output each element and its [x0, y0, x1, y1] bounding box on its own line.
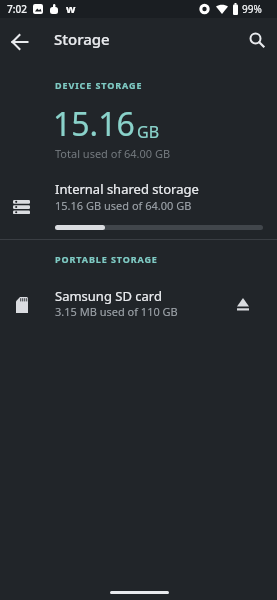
- staticText: 3.15 MB used of 110 GB: [55, 304, 178, 319]
- button[interactable]: Samsung SD card: [0, 276, 277, 328]
- staticText: Internal shared storage: [55, 180, 199, 198]
- staticText: PORTABLE STORAGE: [55, 253, 158, 265]
- staticText: w: [66, 1, 76, 16]
- staticText: 15.16 GB used of 64.00 GB: [55, 198, 192, 213]
- staticText: DEVICE STORAGE: [55, 79, 143, 91]
- staticText: Samsung SD card: [55, 287, 162, 305]
- button[interactable]: [6, 28, 34, 56]
- staticText: 15.16: [53, 102, 135, 146]
- button[interactable]: [243, 26, 271, 54]
- staticText: Total used of 64.00 GB: [55, 146, 171, 161]
- staticText: 99%: [242, 2, 262, 16]
- staticText: 7:02: [7, 2, 27, 16]
- button[interactable]: [237, 298, 249, 311]
- button[interactable]: Internal shared storage: [0, 172, 277, 234]
- staticText: GB: [137, 121, 160, 143]
- staticText: Storage: [54, 29, 110, 49]
